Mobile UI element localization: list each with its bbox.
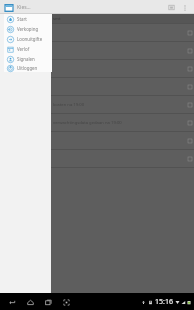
staticText: Signalen bbox=[17, 56, 35, 62]
staticText: Loonuitgifte bbox=[17, 36, 43, 42]
button[interactable]: Loonuitgifte bbox=[4, 34, 52, 44]
button[interactable]: Select item bbox=[51, 42, 194, 59]
button[interactable]: Select item bbox=[51, 24, 194, 41]
button[interactable]: Home bbox=[23, 295, 37, 309]
button[interactable]: App icon bbox=[3, 2, 14, 13]
button[interactable]: Refresh bbox=[165, 1, 178, 14]
button[interactable]: Status bbox=[141, 297, 194, 307]
staticText: Uitloggen bbox=[17, 65, 38, 71]
button[interactable]: Select item bbox=[187, 156, 192, 161]
button[interactable]: Signalen bbox=[4, 54, 52, 64]
button[interactable]: Select item bbox=[187, 102, 192, 107]
button[interactable]: Select item bbox=[187, 120, 192, 125]
button[interactable]: Verlof bbox=[4, 44, 52, 54]
staticText: Verkoping bbox=[17, 26, 39, 32]
button[interactable]: Recent apps bbox=[41, 295, 55, 309]
button[interactable]: Select item bbox=[187, 66, 192, 71]
button[interactable]: Uitloggen bbox=[4, 64, 52, 72]
staticText: Start bbox=[17, 16, 27, 22]
button[interactable]: Select item bbox=[187, 48, 192, 53]
staticText: Kies... bbox=[17, 4, 31, 11]
staticText: Verlof bbox=[17, 46, 30, 52]
staticText: verwachtingsdata gedaan na 19:00 bbox=[53, 120, 122, 126]
staticText: kosten na 19:00 bbox=[53, 102, 85, 108]
button[interactable]: Select item bbox=[51, 60, 194, 77]
button[interactable]: Select item bbox=[187, 84, 192, 89]
button[interactable]: Select item bbox=[187, 30, 192, 35]
button[interactable]: More options bbox=[178, 1, 191, 14]
button[interactable]: Select item bbox=[187, 138, 192, 143]
staticText: 15:16 bbox=[155, 297, 173, 307]
button[interactable]: Start bbox=[4, 14, 52, 24]
button[interactable]: Verkoping bbox=[4, 24, 52, 34]
button[interactable]: Back bbox=[5, 295, 19, 309]
button[interactable]: Screenshot bbox=[59, 295, 73, 309]
staticText: smt bbox=[53, 16, 61, 22]
